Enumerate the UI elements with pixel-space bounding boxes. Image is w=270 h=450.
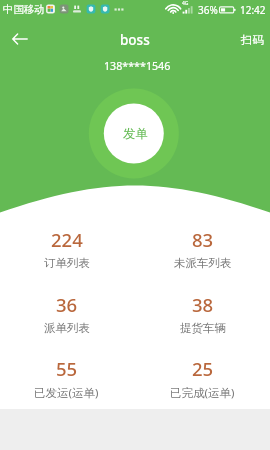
button[interactable]: 36 bbox=[0, 281, 135, 346]
staticText: 55 bbox=[56, 356, 78, 381]
button[interactable]: 83 bbox=[135, 216, 270, 281]
staticText: 36 bbox=[56, 292, 78, 317]
button[interactable]: 扫码 bbox=[236, 22, 270, 58]
button[interactable]: 38 bbox=[135, 281, 270, 346]
staticText: 138****1546 bbox=[104, 59, 171, 74]
staticText: 订单列表 bbox=[44, 256, 90, 270]
button[interactable]: 发单 bbox=[105, 104, 165, 164]
button[interactable]: 55 bbox=[0, 346, 135, 411]
staticText: 38 bbox=[192, 292, 214, 317]
button[interactable]: Back bbox=[2, 21, 38, 57]
staticText: 扫码 bbox=[241, 33, 265, 48]
staticText: 已完成(运单) bbox=[170, 385, 235, 401]
staticText: 224 bbox=[51, 227, 83, 252]
staticText: 4G bbox=[182, 0, 189, 7]
staticText: 提货车辆 bbox=[180, 321, 226, 335]
staticText: 12:42 bbox=[240, 3, 266, 17]
staticText: 发单 bbox=[123, 126, 148, 142]
staticText: 83 bbox=[192, 227, 214, 252]
staticText: 25 bbox=[192, 356, 214, 381]
staticText: 未派车列表 bbox=[174, 256, 232, 270]
staticText: 36% bbox=[198, 3, 218, 17]
staticText: 派单列表 bbox=[44, 321, 90, 335]
staticText: 中国移动 bbox=[3, 3, 45, 16]
button[interactable]: 25 bbox=[135, 346, 270, 411]
staticText: 已发运(运单) bbox=[34, 385, 99, 401]
staticText: boss bbox=[120, 31, 150, 49]
button[interactable]: 224 bbox=[0, 216, 135, 281]
